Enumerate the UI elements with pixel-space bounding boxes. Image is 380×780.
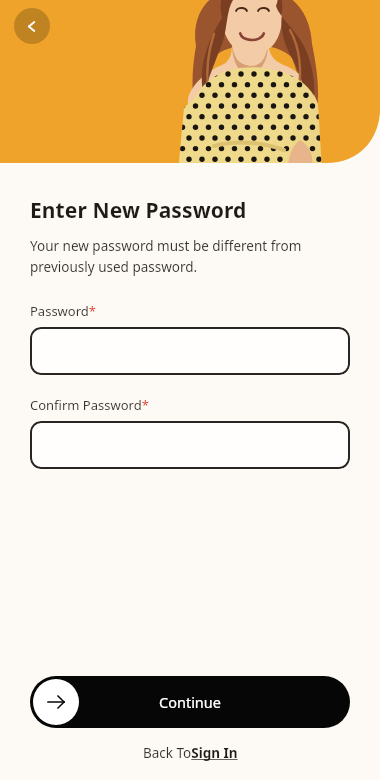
staticText: Confirm Password* <box>30 396 149 414</box>
button[interactable] <box>30 421 350 469</box>
staticText: Password* <box>30 302 96 320</box>
button[interactable]: Back ToSign In <box>137 742 244 764</box>
staticText: Enter New Password <box>30 196 247 225</box>
button[interactable] <box>30 327 350 375</box>
staticText: Back ToSign In <box>143 744 238 762</box>
staticText: Your new password must be different from… <box>30 237 350 276</box>
button[interactable]: Continue <box>30 676 350 728</box>
button[interactable]: Back <box>14 8 50 44</box>
staticText: Continue <box>159 692 221 712</box>
